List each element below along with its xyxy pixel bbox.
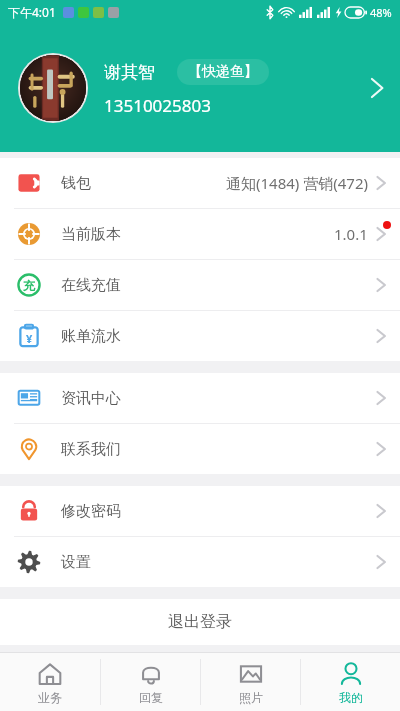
staticText: 回复 xyxy=(139,690,163,705)
staticText: 账单流水 xyxy=(61,327,121,346)
button[interactable]: 联系我们 xyxy=(0,424,400,474)
staticText: 修改密码 xyxy=(61,502,121,521)
button[interactable]: 照片 xyxy=(201,653,300,711)
staticText: 充 xyxy=(23,278,35,293)
button[interactable]: 退出登录 xyxy=(0,599,400,645)
staticText: 在线充值 xyxy=(61,276,121,295)
staticText: 当前版本 xyxy=(61,225,121,244)
staticText: 联系我们 xyxy=(61,440,121,459)
staticText: 钱包 xyxy=(61,174,91,193)
staticText: ¥ xyxy=(26,331,33,346)
staticText: 资讯中心 xyxy=(61,389,121,408)
staticText: 业务 xyxy=(38,690,62,705)
staticText: 退出登录 xyxy=(168,612,232,632)
staticText: 谢其智 xyxy=(104,62,155,83)
staticText: 设置 xyxy=(61,553,91,572)
staticText: 我的 xyxy=(339,690,363,705)
staticText: 照片 xyxy=(239,690,263,705)
button[interactable]: 回复 xyxy=(101,653,200,711)
button[interactable]: 业务 xyxy=(0,653,100,711)
button[interactable]: 充 xyxy=(0,260,400,310)
staticText: 1.0.1 xyxy=(334,224,368,244)
button[interactable]: 当前版本 xyxy=(0,209,400,259)
staticText: 通知(1484) 营销(472) xyxy=(226,173,368,193)
button[interactable]: 谢其智 xyxy=(0,24,400,152)
staticText: 下午4:01 xyxy=(8,4,56,20)
button[interactable]: ¥ xyxy=(0,311,400,361)
button[interactable]: 资讯中心 xyxy=(0,373,400,423)
button[interactable]: 设置 xyxy=(0,537,400,587)
button[interactable]: 修改密码 xyxy=(0,486,400,536)
button[interactable]: 我的 xyxy=(301,653,400,711)
staticText: 48% xyxy=(370,5,392,20)
staticText: 13510025803 xyxy=(104,94,211,117)
button[interactable]: 钱包 xyxy=(0,158,400,208)
staticText: 【快递鱼】 xyxy=(188,63,258,81)
